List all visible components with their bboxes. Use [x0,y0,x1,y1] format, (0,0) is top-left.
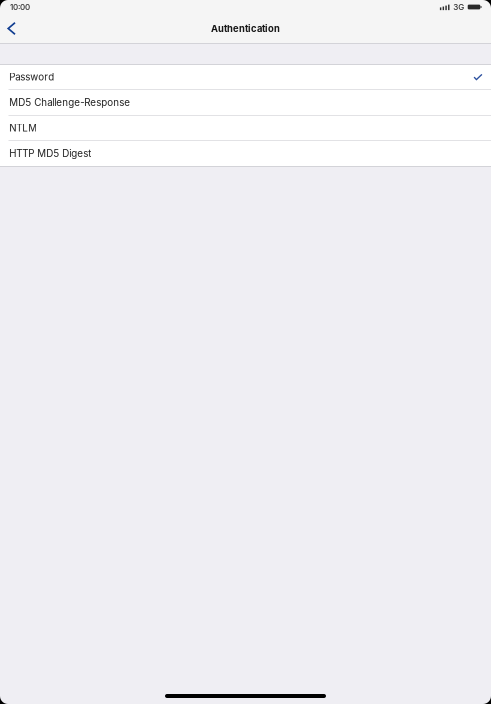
button[interactable]: HTTP MD5 Digest [0,141,491,166]
staticText: Authentication [211,23,280,34]
staticText: Password [9,71,54,83]
staticText: HTTP MD5 Digest [9,148,91,159]
button[interactable]: NTLM [0,116,491,141]
button[interactable]: Back [0,16,20,40]
staticText: MD5 Challenge-Response [9,97,130,108]
staticText: 3G [453,2,464,12]
staticText: NTLM [9,122,37,134]
staticText: 10:00 [10,2,30,12]
button[interactable]: Password [0,65,491,90]
button[interactable]: MD5 Challenge-Response [0,90,491,116]
